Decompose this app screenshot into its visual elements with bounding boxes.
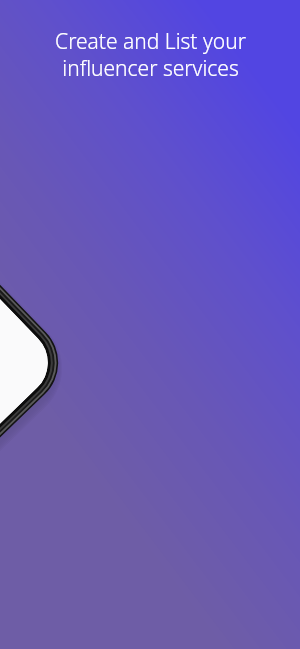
- staticText: Create and List your influencer services: [55, 27, 246, 82]
